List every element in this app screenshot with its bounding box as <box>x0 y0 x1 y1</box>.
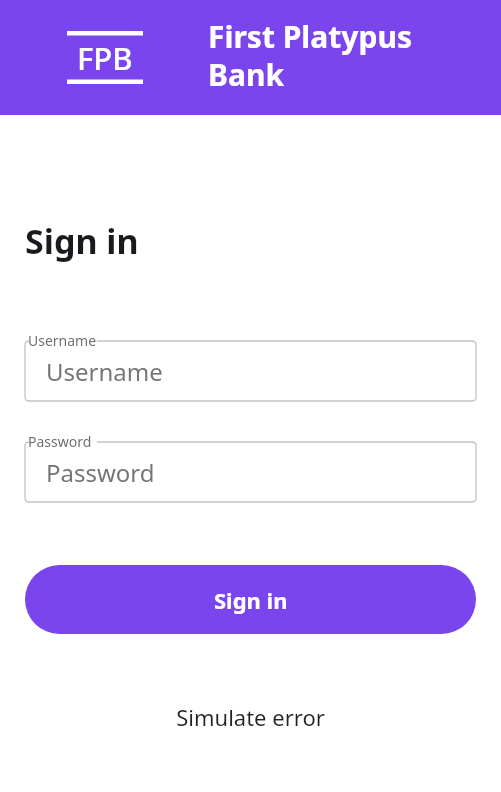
other: First Platypus Bank logo <box>67 31 143 84</box>
staticText: Sign in <box>214 585 288 615</box>
button[interactable]: Password <box>25 442 476 502</box>
staticText: Password <box>46 456 155 489</box>
staticText: First Platypus Bank <box>208 16 412 95</box>
button[interactable]: Sign in <box>25 565 476 634</box>
staticText: Simulate error <box>176 702 325 732</box>
staticText: FPB <box>77 37 133 79</box>
staticText: Username <box>28 331 97 350</box>
button[interactable]: Simulate error <box>0 702 501 732</box>
button[interactable]: Username <box>25 341 476 401</box>
staticText: Password <box>28 432 92 451</box>
staticText: Sign in <box>25 218 139 264</box>
staticText: Username <box>46 355 163 388</box>
